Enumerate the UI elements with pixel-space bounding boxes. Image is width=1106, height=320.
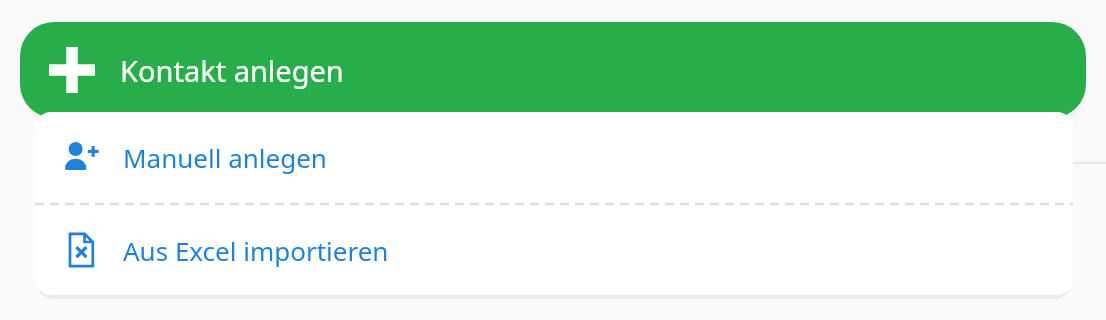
other: Hinzufügen <box>48 46 96 94</box>
button[interactable]: Aus Excel importieren <box>35 205 1073 295</box>
button[interactable]: Hinzufügen <box>20 22 1086 118</box>
staticText: Aus Excel importieren <box>123 233 389 268</box>
staticText: Kontakt anlegen <box>120 51 344 90</box>
staticText: Manuell anlegen <box>123 140 327 175</box>
button[interactable]: Manuell anlegen <box>35 112 1073 203</box>
